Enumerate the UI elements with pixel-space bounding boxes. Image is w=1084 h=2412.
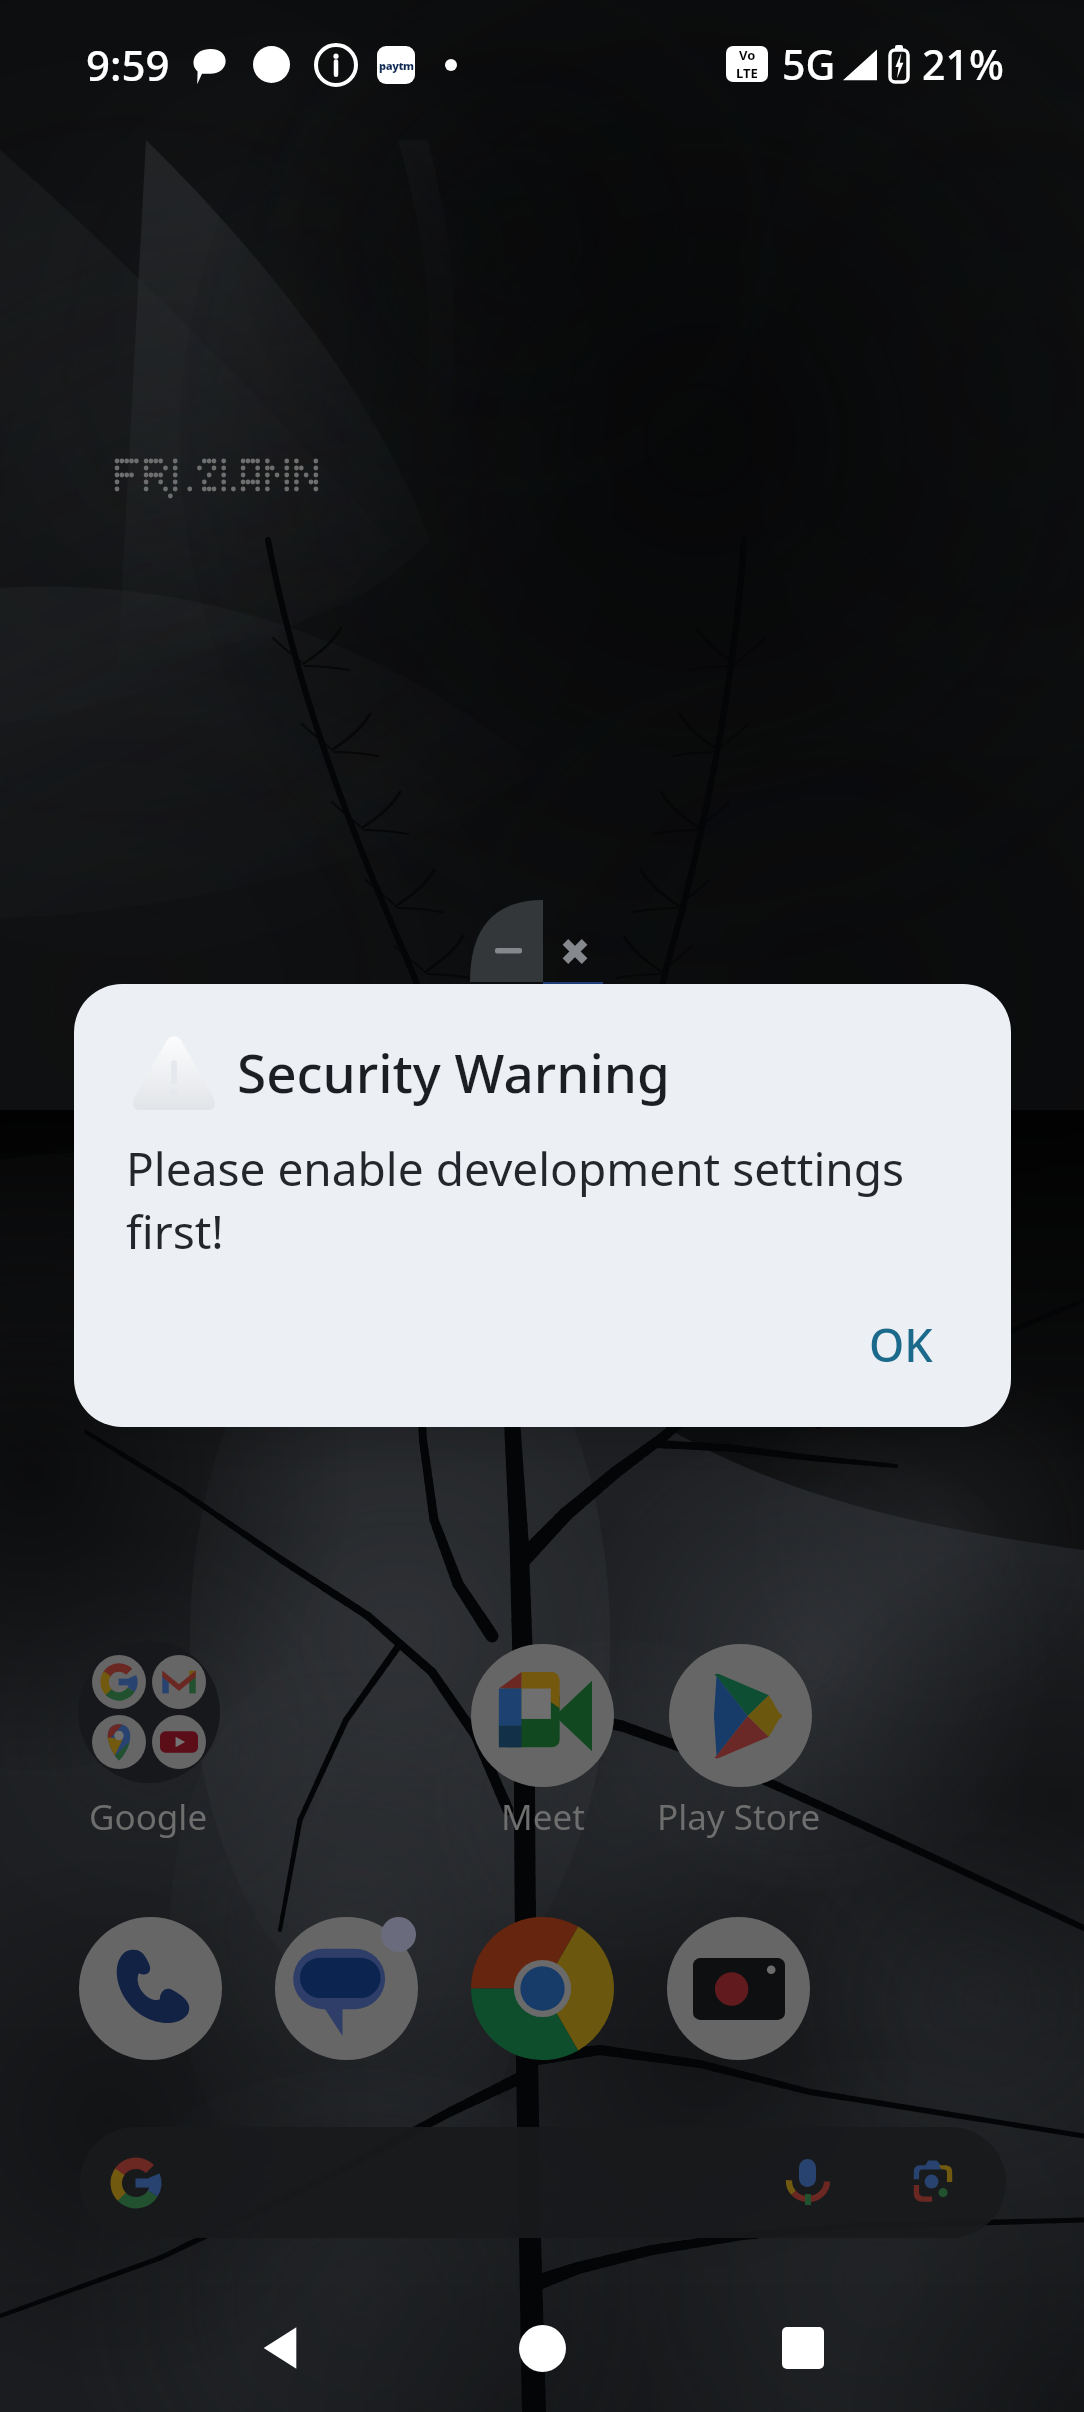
staticText: OK <box>869 1314 933 1375</box>
staticText: 9:59 <box>86 36 170 93</box>
staticText: paytm <box>379 58 414 73</box>
button[interactable]: Back <box>190 2282 370 2412</box>
button[interactable]: Screen Recorder <box>667 1917 810 2060</box>
button[interactable]: Chrome <box>471 1917 614 2060</box>
button[interactable]: Play Store <box>669 1644 812 1787</box>
staticText: 5G <box>782 36 836 92</box>
button[interactable]: OK <box>830 1296 972 1392</box>
button[interactable]: Google folder <box>78 1641 220 1783</box>
staticText: Security Warning <box>237 1036 670 1108</box>
staticText: Meet <box>501 1793 585 1841</box>
button[interactable]: Search <box>80 2127 1006 2238</box>
staticText: Play Store <box>657 1793 821 1841</box>
button[interactable]: Phone <box>79 1917 222 2060</box>
staticText: LTE <box>736 64 758 82</box>
staticText: Vo <box>739 46 756 64</box>
staticText: Please enable development settings first… <box>126 1137 966 1262</box>
button[interactable]: Messages <box>275 1917 418 2060</box>
button[interactable]: Recent apps <box>713 2282 893 2412</box>
staticText: Google <box>89 1793 208 1841</box>
button[interactable]: Meet <box>471 1644 614 1787</box>
button[interactable]: Home <box>452 2282 632 2412</box>
staticText: 21% <box>922 36 1004 92</box>
